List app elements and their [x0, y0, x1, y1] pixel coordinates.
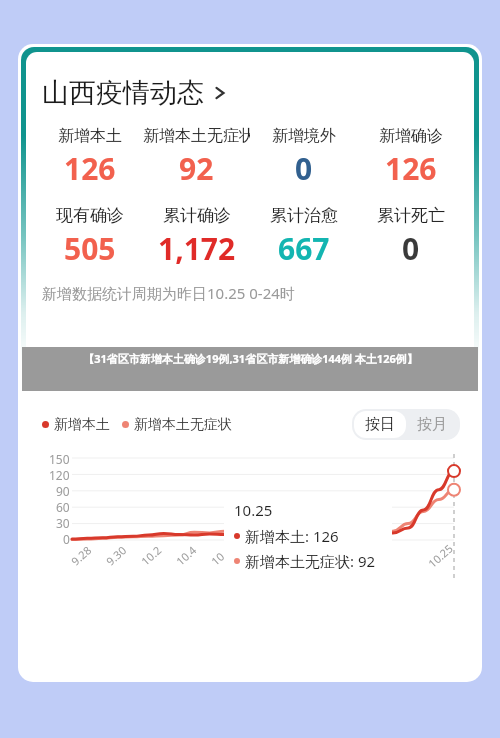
button[interactable]: 累计确诊: [143, 205, 250, 269]
staticText: 150: [49, 451, 70, 467]
button[interactable]: 新增本土: [36, 126, 143, 189]
button[interactable]: 新增本土无症状: [143, 126, 250, 189]
staticText: 9.30: [103, 543, 129, 568]
staticText: 新增数据统计周期为昨日10.25 0-24时: [42, 283, 295, 303]
staticText: 山西疫情动态: [42, 76, 204, 110]
button[interactable]: 按月: [417, 415, 447, 434]
staticText: 0: [402, 228, 420, 269]
staticText: 累计死亡: [377, 205, 445, 226]
staticText: 新增本土无症状: [143, 126, 250, 146]
staticText: 10.4: [173, 543, 199, 568]
staticText: 9.28: [68, 543, 94, 568]
staticText: 60: [56, 499, 70, 515]
button[interactable]: 累计死亡: [357, 205, 464, 269]
staticText: 10.8: [244, 543, 270, 568]
staticText: 30: [56, 515, 70, 531]
staticText: 10.25: [425, 540, 456, 571]
button[interactable]: 疫情趋势: [40, 349, 244, 389]
staticText: 0: [63, 531, 70, 547]
staticText: 【31省区市新增本土确诊19例,31省区市新增确诊144例 本土126例】: [83, 351, 418, 366]
button[interactable]: 现有确诊: [36, 205, 143, 269]
staticText: 10.2: [138, 543, 164, 568]
staticText: 新增本土: [58, 126, 122, 146]
staticText: 按日: [365, 415, 395, 434]
staticText: 120: [49, 467, 70, 483]
staticText: 新增本土: 126: [245, 526, 339, 546]
staticText: 累计确诊: [163, 205, 231, 226]
staticText: 667: [278, 228, 330, 269]
staticText: 505: [64, 228, 116, 269]
button[interactable]: 累计治愈: [250, 205, 357, 269]
button[interactable]: 各地区新增详情: [256, 349, 460, 389]
staticText: 新增本土无症状: 92: [245, 551, 376, 571]
staticText: 10.25: [234, 500, 273, 520]
staticText: 1,172: [158, 228, 236, 269]
staticText: 90: [56, 483, 70, 499]
staticText: 10.6: [208, 543, 234, 568]
staticText: 现有确诊: [56, 205, 124, 226]
staticText: 92: [179, 148, 214, 189]
staticText: 新增本土: [54, 416, 110, 434]
staticText: 累计治愈: [270, 205, 338, 226]
staticText: 按月: [417, 415, 447, 434]
staticText: 新增确诊: [379, 126, 443, 146]
staticText: 新增境外: [272, 126, 336, 146]
button[interactable]: 新增确诊: [357, 126, 464, 189]
staticText: 126: [385, 148, 437, 189]
button[interactable]: 按日: [365, 415, 395, 434]
staticText: 各地区新增详情: [299, 359, 418, 380]
staticText: 126: [64, 148, 116, 189]
staticText: 新增本土无症状: [134, 416, 232, 434]
staticText: 0: [295, 148, 313, 189]
button[interactable]: 山西疫情动态: [42, 76, 228, 110]
staticText: 疫情趋势: [108, 359, 176, 380]
button[interactable]: 新增境外: [250, 126, 357, 189]
